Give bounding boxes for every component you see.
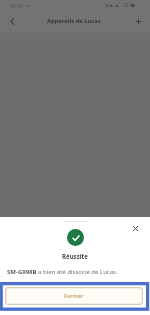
staticText: Fermer xyxy=(64,292,84,300)
staticText: SM-G998B a bien été dissocié de Lucas. xyxy=(7,268,118,276)
staticText: 92% xyxy=(123,2,133,9)
button[interactable]: Back xyxy=(3,12,21,30)
button[interactable]: Add xyxy=(129,12,147,30)
button[interactable]: Fermer xyxy=(5,287,143,305)
staticText: 08:59 xyxy=(10,2,24,9)
staticText: Réussite xyxy=(62,252,88,260)
button[interactable]: Close xyxy=(127,220,144,237)
staticText: Appareils de Lucas xyxy=(47,17,101,25)
